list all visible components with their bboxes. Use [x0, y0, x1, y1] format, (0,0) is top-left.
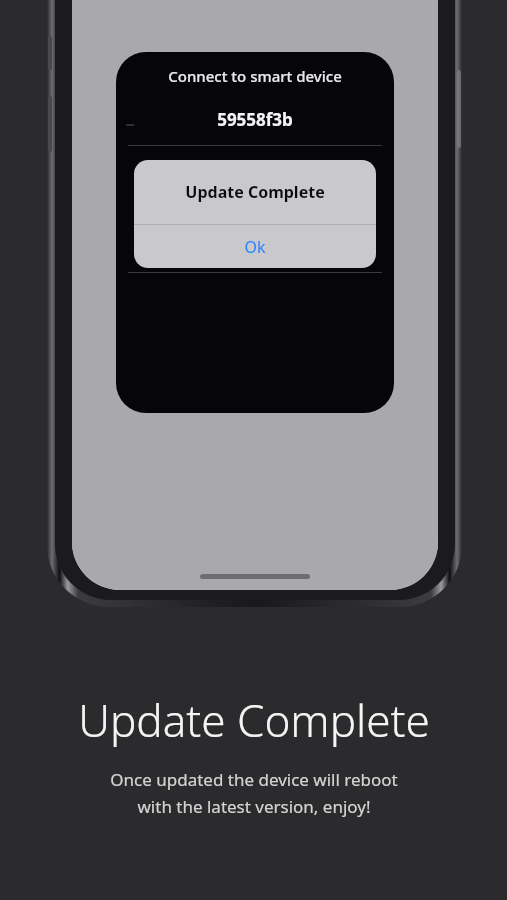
- staticText: Once updated the device will reboot with…: [110, 768, 398, 818]
- staticText: Update Complete: [185, 181, 325, 203]
- staticText: Connect to smart device: [168, 66, 342, 86]
- staticText: Update Complete: [78, 690, 430, 750]
- staticText: 59558f3b: [217, 108, 293, 131]
- staticText: Ok: [244, 236, 266, 258]
- button[interactable]: Ok: [134, 225, 376, 268]
